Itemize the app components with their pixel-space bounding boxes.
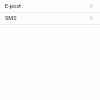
button[interactable]: SMS [0, 13, 100, 24]
other: Open SMS [90, 16, 93, 20]
staticText: E-post [5, 3, 21, 9]
button[interactable]: E-post [0, 0, 100, 12]
staticText: SMS [5, 15, 17, 21]
other: Open E-post [90, 4, 93, 8]
